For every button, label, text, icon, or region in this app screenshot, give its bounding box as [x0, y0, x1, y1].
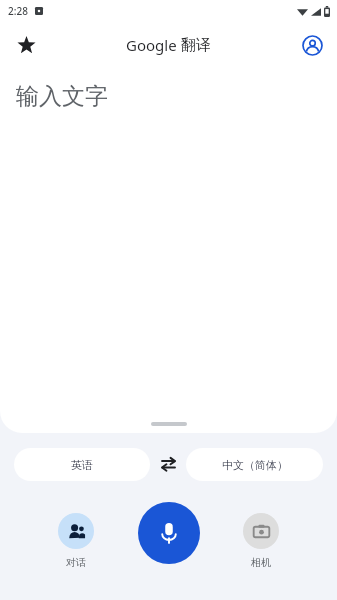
- button[interactable]: Saved: [6, 25, 46, 65]
- button[interactable]: Account: [295, 28, 329, 62]
- staticText: Google: [126, 35, 177, 55]
- button[interactable]: Speak: [138, 502, 200, 564]
- staticText: 英语: [71, 458, 93, 472]
- button[interactable]: 相机: [243, 513, 279, 569]
- button[interactable]: 中文（简体）: [186, 448, 323, 481]
- staticText: 2:28: [8, 4, 28, 18]
- button[interactable]: Swap languages: [150, 446, 186, 482]
- staticText: 相机: [251, 556, 271, 569]
- staticText: 中文（简体）: [222, 458, 288, 472]
- button[interactable]: 对话: [58, 513, 94, 569]
- staticText: 翻译: [181, 36, 211, 55]
- staticText: 对话: [66, 556, 86, 569]
- staticText: 输入文字: [16, 82, 108, 111]
- button[interactable]: 英语: [14, 448, 150, 481]
